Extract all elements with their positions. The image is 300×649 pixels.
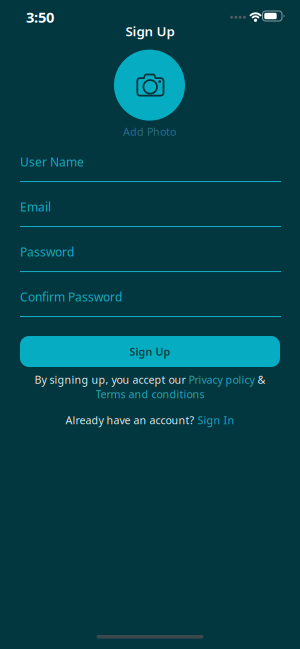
- staticText: User Name: [20, 154, 84, 170]
- staticText: &: [254, 372, 265, 387]
- staticText: Sign Up: [129, 344, 170, 359]
- staticText: Password: [20, 244, 74, 260]
- staticText: Add Photo: [123, 125, 176, 139]
- staticText: Sign In: [197, 413, 234, 427]
- button[interactable]: Add Photo: [114, 50, 185, 139]
- button[interactable]: Sign In: [197, 413, 234, 427]
- staticText: Privacy policy: [188, 372, 254, 387]
- button[interactable]: Sign Up: [20, 336, 280, 367]
- button[interactable]: Terms and conditions: [95, 387, 204, 401]
- staticText: Already have an account?: [65, 413, 197, 427]
- staticText: By signing up, you accept our: [34, 372, 188, 387]
- staticText: Confirm Password: [20, 289, 122, 305]
- staticText: 3:50: [26, 7, 54, 27]
- staticText: Terms and conditions: [95, 387, 204, 401]
- staticText: Email: [20, 199, 51, 215]
- button[interactable]: User Name: [20, 153, 281, 182]
- button[interactable]: Password: [20, 243, 281, 272]
- button[interactable]: Email: [20, 198, 281, 227]
- button[interactable]: Privacy policy: [188, 372, 254, 387]
- staticText: Sign Up: [125, 22, 174, 40]
- button[interactable]: Confirm Password: [20, 288, 281, 317]
